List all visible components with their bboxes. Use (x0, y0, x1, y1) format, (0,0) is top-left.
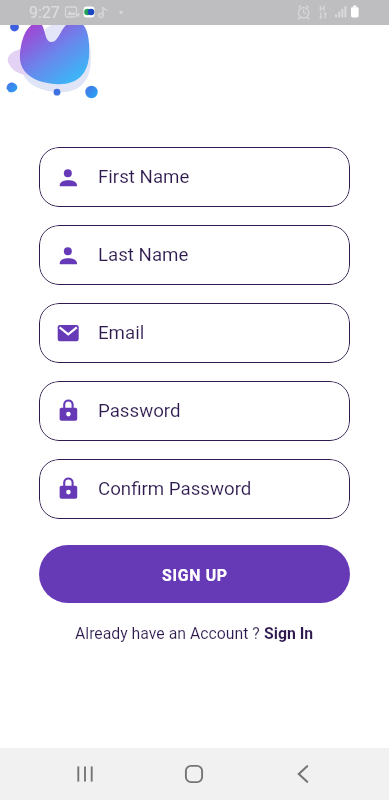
staticText: Password (98, 400, 181, 422)
button[interactable]: Back (248, 748, 357, 800)
staticText: Last Name (98, 244, 189, 266)
button[interactable]: Confirm Password (39, 459, 350, 519)
button[interactable]: Email (39, 303, 350, 363)
staticText: Sign In (264, 624, 314, 643)
button[interactable]: Home (139, 748, 248, 800)
staticText: First Name (98, 166, 190, 188)
button[interactable]: Sign In (264, 624, 314, 643)
staticText: Confirm Password (98, 478, 252, 500)
button[interactable]: Last Name (39, 225, 350, 285)
staticText: 9:27 (29, 3, 60, 22)
button[interactable]: SIGN UP (39, 545, 350, 603)
button[interactable]: Password (39, 381, 350, 441)
staticText: Already have an Account ? (75, 624, 264, 643)
button[interactable]: First Name (39, 147, 350, 207)
staticText: Email (98, 322, 145, 344)
button[interactable]: Recent apps (30, 748, 139, 800)
staticText: SIGN UP (162, 566, 228, 585)
